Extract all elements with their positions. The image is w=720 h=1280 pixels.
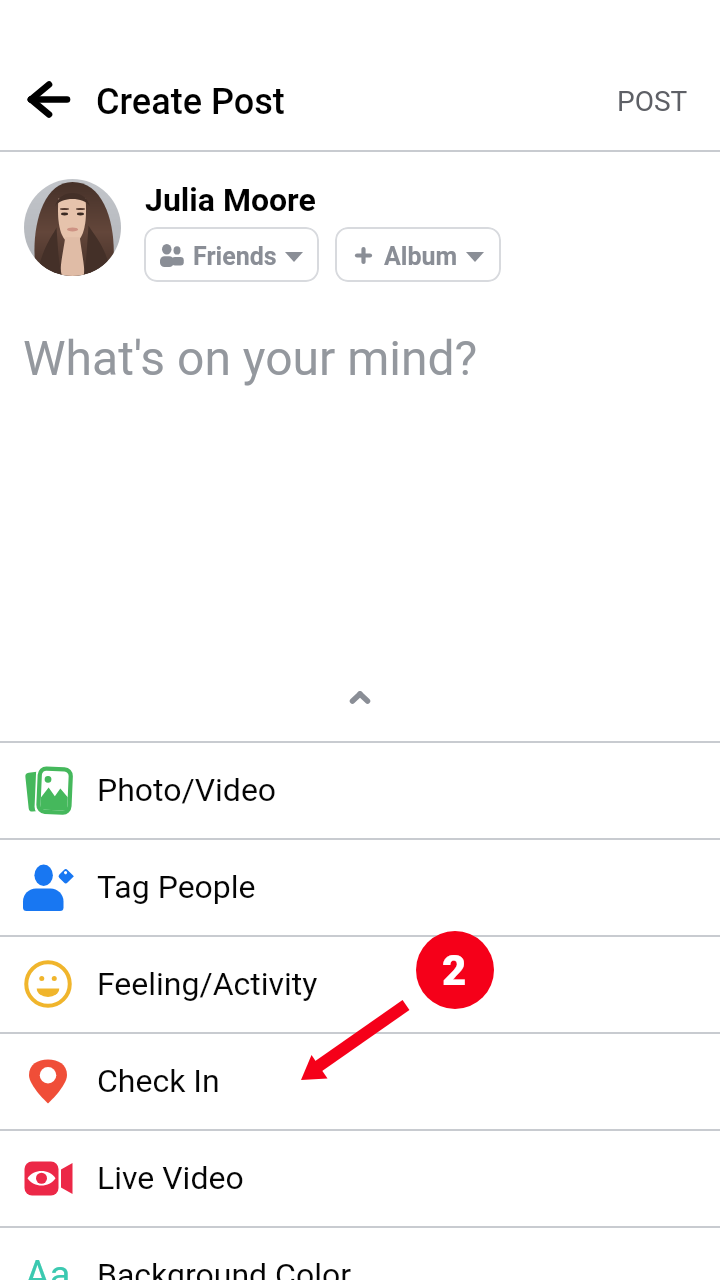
button[interactable]: Album <box>335 227 501 282</box>
button[interactable]: Photo/Video <box>0 742 720 838</box>
staticText: Aa <box>25 1253 71 1280</box>
button[interactable]: Friends <box>144 227 319 282</box>
staticText: Background Color <box>97 1256 351 1280</box>
staticText: Photo/Video <box>97 771 277 809</box>
button[interactable]: Check In <box>0 1033 720 1129</box>
staticText: Create Post <box>96 81 285 123</box>
staticText: Tag People <box>97 868 256 906</box>
button[interactable]: Aa <box>0 1227 720 1280</box>
staticText: What's on your mind? <box>23 330 478 386</box>
button[interactable]: Tag People <box>0 839 720 935</box>
staticText: Feeling/Activity <box>97 965 318 1003</box>
staticText: Live Video <box>97 1159 244 1197</box>
staticText: Album <box>384 242 458 271</box>
staticText: Friends <box>193 242 277 271</box>
staticText: Check In <box>97 1062 220 1100</box>
button[interactable]: Live Video <box>0 1130 720 1226</box>
staticText: POST <box>617 85 688 118</box>
button[interactable]: Collapse <box>328 670 392 724</box>
button[interactable]: POST <box>586 61 718 141</box>
staticText: 2 <box>442 946 467 995</box>
button[interactable]: Back <box>1 54 93 146</box>
button[interactable]: Feeling/Activity <box>0 936 720 1032</box>
staticText: Julia Moore <box>145 181 316 219</box>
